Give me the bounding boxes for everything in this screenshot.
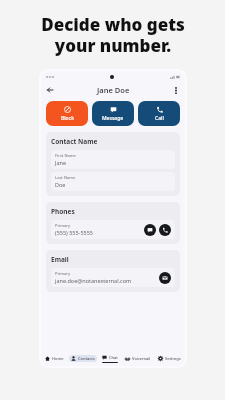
staticText: Primary: [55, 223, 71, 228]
staticText: Call: [155, 115, 164, 122]
staticText: Jane: [55, 159, 67, 166]
staticText: (555) 555-5555: [55, 229, 93, 236]
button[interactable]: Chat: [99, 354, 121, 363]
button[interactable]: Last Name: [51, 172, 175, 191]
staticText: Voicemail: [132, 356, 151, 361]
staticText: Settings: [165, 356, 181, 361]
staticText: Jane Doe: [97, 85, 130, 95]
button[interactable]: Voicemail: [122, 355, 154, 362]
button[interactable]: Block: [46, 101, 88, 126]
button[interactable]: First Name: [51, 150, 175, 169]
staticText: Email: [51, 255, 69, 264]
staticText: Message: [102, 115, 124, 122]
button[interactable]: Contacts: [68, 355, 98, 362]
button[interactable]: Message: [144, 224, 156, 236]
button[interactable]: Settings: [155, 355, 184, 362]
staticText: Home: [52, 356, 64, 361]
button[interactable]: Email: [159, 272, 171, 284]
staticText: Decide who gets your number.: [41, 13, 185, 57]
button[interactable]: Primary: [51, 220, 175, 239]
button[interactable]: Primary: [51, 268, 175, 287]
button[interactable]: Call: [159, 224, 171, 236]
staticText: Contact Name: [51, 137, 98, 146]
button[interactable]: More options: [170, 84, 182, 96]
button[interactable]: Back: [44, 84, 56, 96]
staticText: Primary: [55, 271, 71, 276]
staticText: jane.doe@notanexternal.com: [55, 277, 132, 284]
staticText: Chat: [109, 355, 118, 360]
staticText: First Name: [55, 153, 76, 158]
staticText: Block: [61, 115, 74, 122]
button[interactable]: Message: [92, 101, 134, 126]
button[interactable]: Home: [42, 355, 67, 362]
staticText: Phones: [51, 207, 75, 216]
button[interactable]: Call: [138, 101, 180, 126]
staticText: Last Name: [55, 175, 76, 180]
staticText: Contacts: [78, 356, 95, 361]
staticText: Doe: [55, 181, 66, 188]
